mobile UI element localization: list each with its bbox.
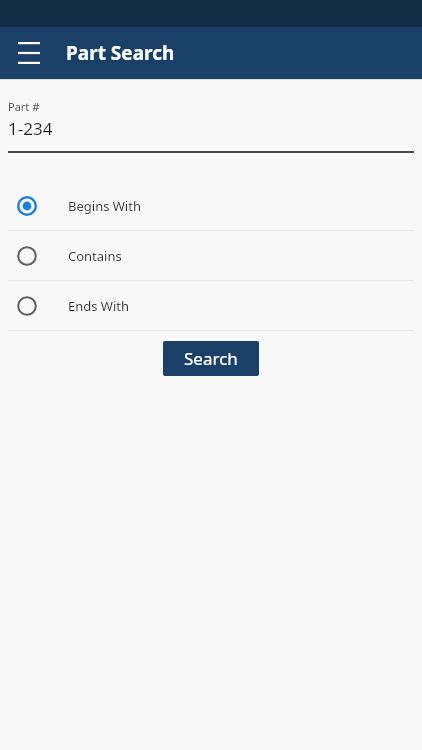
button[interactable]: Begins With bbox=[0, 181, 422, 230]
button[interactable]: Ends With bbox=[0, 281, 422, 330]
staticText: Ends With bbox=[68, 297, 130, 315]
staticText: Part # bbox=[8, 99, 40, 114]
staticText: Part Search bbox=[66, 40, 175, 66]
staticText: 1-234 bbox=[8, 117, 53, 140]
staticText: Begins With bbox=[68, 197, 141, 215]
staticText: Contains bbox=[68, 247, 122, 265]
button[interactable]: Search bbox=[163, 341, 259, 376]
button[interactable]: Part # bbox=[8, 80, 414, 153]
button[interactable]: Contains bbox=[0, 231, 422, 280]
staticText: Search bbox=[184, 347, 238, 370]
button[interactable]: Open navigation menu bbox=[9, 33, 49, 73]
